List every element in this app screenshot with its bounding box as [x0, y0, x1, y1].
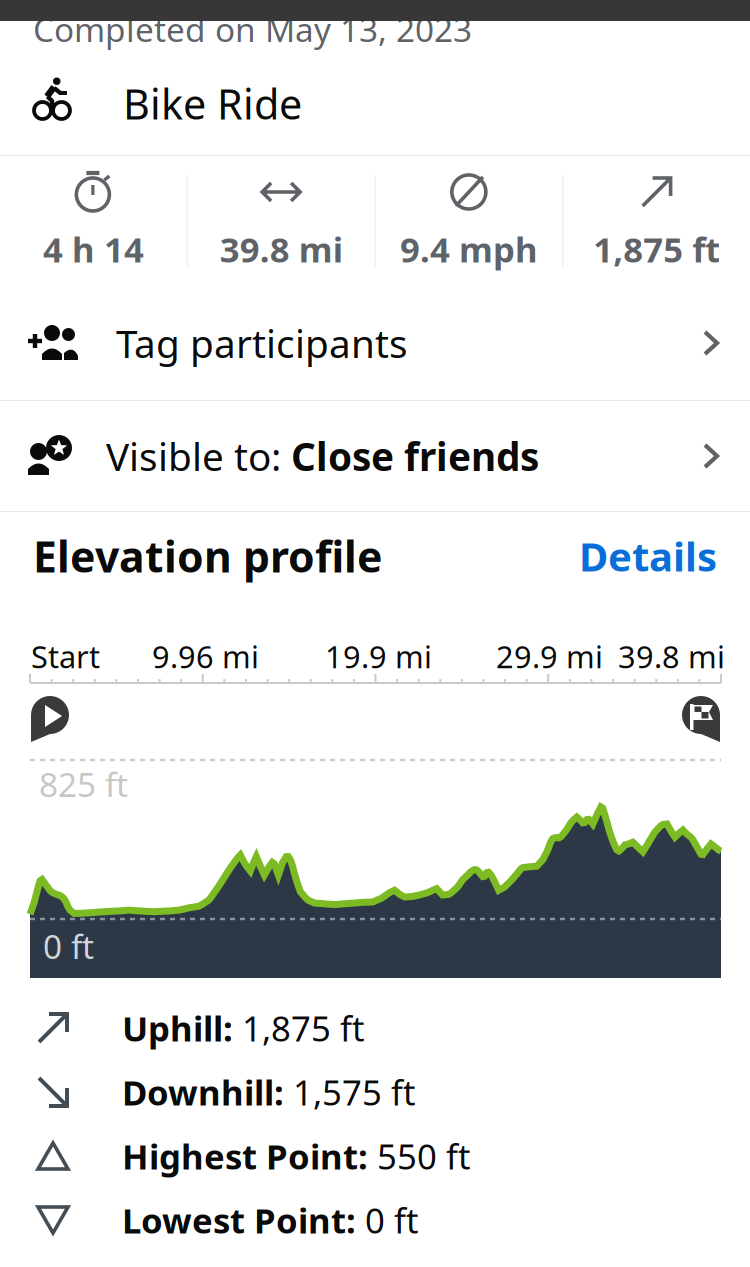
staticText: 0 ft	[43, 924, 94, 968]
staticText: 9.4 mph	[400, 226, 538, 272]
staticText: 1,875 ft	[593, 226, 720, 272]
staticText: 29.9 mi	[496, 636, 603, 677]
staticText: Close friends	[291, 430, 539, 482]
staticText: Details	[579, 529, 717, 582]
staticText: Tag participants	[116, 317, 408, 369]
staticText: 0 ft	[356, 1197, 419, 1243]
staticText: Bike Ride	[123, 76, 302, 131]
staticText: Uphill:	[122, 1005, 233, 1051]
button[interactable]: Tag participants	[0, 286, 750, 400]
staticText: Downhill:	[122, 1069, 284, 1115]
staticText: 19.9 mi	[325, 636, 432, 677]
staticText: 825 ft	[39, 762, 128, 806]
staticText: Visible to:	[106, 430, 291, 482]
staticText: 1,875 ft	[233, 1005, 365, 1051]
staticText: Elevation profile	[33, 528, 382, 584]
staticText: 4 h 14	[43, 226, 144, 272]
staticText: Start	[31, 636, 100, 677]
staticText: 39.8 mi	[220, 226, 343, 272]
staticText: 39.8 mi	[618, 636, 725, 677]
button[interactable]: Details	[579, 529, 750, 582]
button[interactable]: Visible to:	[0, 401, 750, 511]
staticText: Lowest Point:	[122, 1197, 356, 1243]
staticText: 1,575 ft	[284, 1069, 416, 1115]
staticText: 550 ft	[368, 1133, 471, 1179]
staticText: Completed on May 13, 2023	[33, 7, 472, 51]
staticText: 9.96 mi	[152, 636, 259, 677]
staticText: Highest Point:	[122, 1133, 368, 1179]
